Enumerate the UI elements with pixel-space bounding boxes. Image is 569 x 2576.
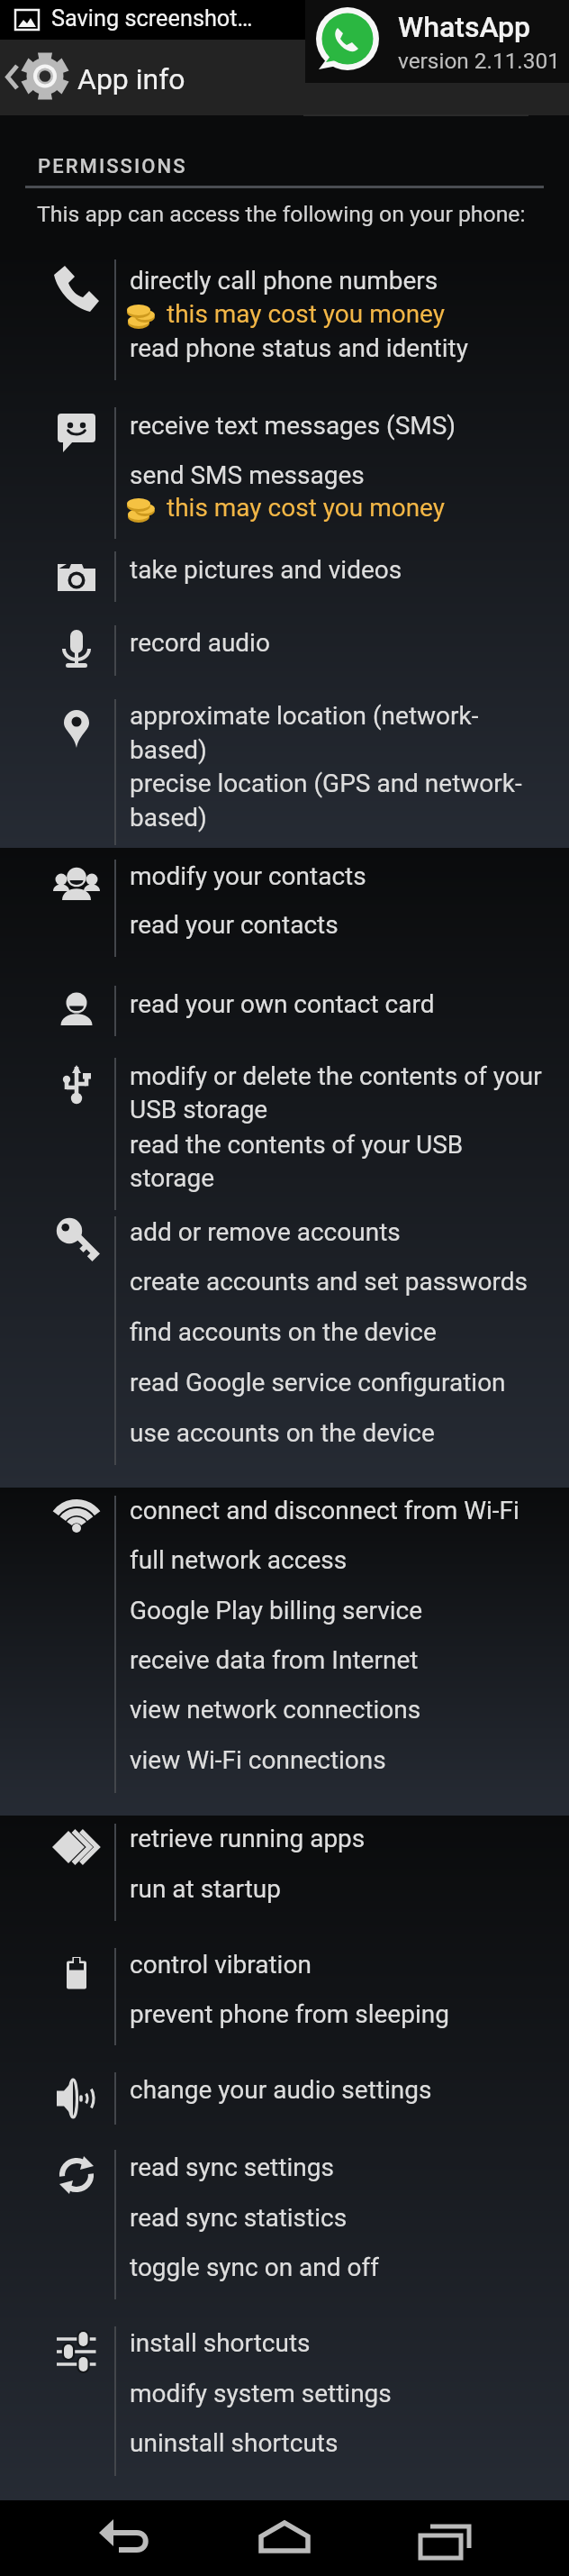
staticText: Google Play billing service: [130, 1596, 423, 1625]
button[interactable]: Recent apps: [391, 2502, 499, 2574]
staticText: read phone status and identity: [130, 333, 468, 363]
staticText: read sync statistics: [130, 2203, 348, 2233]
staticText: record audio: [130, 628, 270, 658]
staticText: add or remove accounts: [130, 1217, 401, 1247]
staticText: retrieve running apps: [130, 1824, 366, 1853]
staticText: read Google service configuration: [130, 1368, 506, 1397]
staticText: run at startup: [130, 1874, 281, 1904]
staticText: read your contacts: [130, 910, 339, 940]
button[interactable]: Navigate up – App info: [0, 40, 569, 115]
staticText: receive data from Internet: [130, 1645, 419, 1675]
staticText: receive text messages (SMS): [130, 411, 456, 441]
staticText: approximate location (network-: [130, 701, 479, 731]
staticText: Saving screenshot…: [51, 5, 253, 32]
staticText: toggle sync on and off: [130, 2253, 379, 2282]
button[interactable]: Home: [230, 2502, 339, 2574]
button[interactable]: Back: [72, 2502, 180, 2574]
staticText: view network connections: [130, 1695, 421, 1725]
staticText: full network access: [130, 1545, 348, 1575]
staticText: find accounts on the device: [130, 1317, 437, 1347]
staticText: use accounts on the device: [130, 1418, 435, 1448]
staticText: precise location (GPS and network-: [130, 769, 522, 798]
staticText: change your audio settings: [130, 2075, 432, 2105]
staticText: modify or delete the contents of your: [130, 1061, 542, 1091]
staticText: send SMS messages: [130, 460, 365, 490]
staticText: USB storage: [130, 1095, 268, 1124]
staticText: take pictures and videos: [130, 555, 402, 585]
staticText: storage: [130, 1163, 215, 1193]
staticText: prevent phone from sleeping: [130, 1999, 449, 2029]
staticText: create accounts and set passwords: [130, 1267, 528, 1297]
staticText: based): [130, 735, 207, 765]
staticText: modify your contacts: [130, 861, 366, 891]
staticText: based): [130, 803, 207, 833]
staticText: control vibration: [130, 1950, 312, 1980]
staticText: This app can access the following on you…: [37, 201, 526, 227]
staticText: view Wi-Fi connections: [130, 1745, 386, 1775]
staticText: connect and disconnect from Wi-Fi: [130, 1496, 519, 1525]
staticText: read your own contact card: [130, 989, 435, 1019]
staticText: version 2.11.301: [398, 48, 560, 74]
staticText: App info: [77, 62, 185, 96]
staticText: this may cost you money: [167, 493, 446, 523]
staticText: PERMISSIONS: [38, 155, 187, 178]
staticText: modify system settings: [130, 2379, 392, 2408]
staticText: this may cost you money: [167, 299, 446, 329]
staticText: read sync settings: [130, 2153, 334, 2182]
staticText: install shortcuts: [130, 2328, 311, 2358]
staticText: read the contents of your USB: [130, 1130, 464, 1160]
staticText: uninstall shortcuts: [130, 2428, 339, 2458]
staticText: WhatsApp: [398, 10, 531, 44]
staticText: directly call phone numbers: [130, 266, 438, 296]
